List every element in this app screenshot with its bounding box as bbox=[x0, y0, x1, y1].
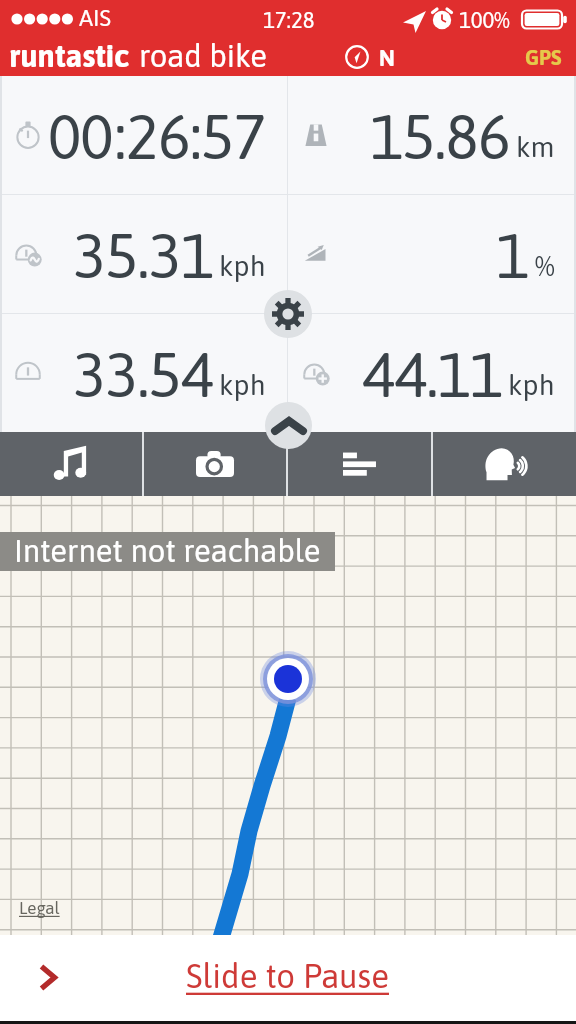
button[interactable]: 1 bbox=[288, 195, 576, 313]
button[interactable]: Laps bbox=[288, 432, 431, 496]
staticText: 35.31 bbox=[73, 220, 213, 291]
staticText: kph bbox=[508, 369, 555, 401]
staticText: 44.11 bbox=[362, 339, 502, 410]
button[interactable]: Expand panel bbox=[265, 402, 312, 449]
button[interactable]: 33.54 bbox=[0, 314, 287, 432]
staticText: km bbox=[516, 131, 555, 163]
staticText: Legal bbox=[19, 898, 60, 917]
staticText: Slide to Pause bbox=[186, 957, 389, 995]
staticText: 00:26:57 bbox=[48, 101, 266, 172]
staticText: 1 bbox=[496, 220, 529, 291]
button[interactable]: 15.86 bbox=[288, 76, 576, 194]
staticText: runtastic bbox=[9, 38, 130, 74]
staticText: Internet not reachable bbox=[14, 533, 321, 569]
staticText: 100% bbox=[459, 7, 510, 32]
button[interactable]: 35.31 bbox=[0, 195, 287, 313]
button[interactable]: Settings bbox=[264, 290, 312, 338]
button[interactable]: 00:26:57 bbox=[0, 76, 287, 194]
staticText: % bbox=[535, 250, 555, 282]
button[interactable]: Voice coach bbox=[433, 432, 576, 496]
staticText: AIS bbox=[79, 5, 112, 31]
staticText: 33.54 bbox=[73, 339, 213, 410]
staticText: kph bbox=[219, 250, 266, 282]
button[interactable]: Music bbox=[0, 432, 142, 496]
staticText: road bike bbox=[139, 38, 267, 74]
staticText: 15.86 bbox=[370, 101, 510, 172]
button[interactable]: Slide to Pause bbox=[0, 935, 576, 1024]
button[interactable]: Camera bbox=[144, 432, 286, 496]
staticText: kph bbox=[219, 369, 266, 401]
button[interactable]: 44.11 bbox=[288, 314, 576, 432]
staticText: GPS bbox=[525, 45, 562, 69]
staticText: N bbox=[379, 45, 395, 70]
staticText: 17:28 bbox=[263, 7, 315, 32]
